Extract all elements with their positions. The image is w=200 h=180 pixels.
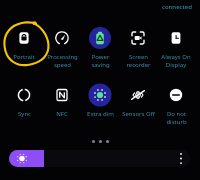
staticText: Do not disturb xyxy=(166,110,187,126)
button[interactable]: Portrait xyxy=(5,26,43,61)
button[interactable]: More options xyxy=(173,150,190,167)
button[interactable]: Sync xyxy=(5,83,43,118)
button[interactable]: NFC xyxy=(43,83,81,118)
staticText: connected xyxy=(162,3,192,11)
button[interactable]: Power saving xyxy=(81,26,119,69)
staticText: Extra dim xyxy=(87,110,114,118)
staticText: Always On Display xyxy=(161,53,191,69)
button[interactable]: Do not disturb xyxy=(157,83,195,126)
button[interactable] xyxy=(9,150,190,167)
staticText: Power saving xyxy=(91,53,110,69)
button[interactable]: Extra dim xyxy=(81,83,119,118)
staticText: Sensors Off xyxy=(122,110,155,118)
button[interactable]: Always On Display xyxy=(157,26,195,69)
staticText: Sync xyxy=(18,110,31,118)
button[interactable]: Processing speed xyxy=(43,26,81,69)
button[interactable]: Sensors Off xyxy=(119,83,157,118)
staticText: NFC xyxy=(56,110,68,118)
staticText: Processing speed xyxy=(47,53,78,69)
button[interactable]: Screen recorder xyxy=(119,26,157,69)
staticText: Screen recorder xyxy=(126,53,151,69)
staticText: Portrait xyxy=(13,53,35,61)
